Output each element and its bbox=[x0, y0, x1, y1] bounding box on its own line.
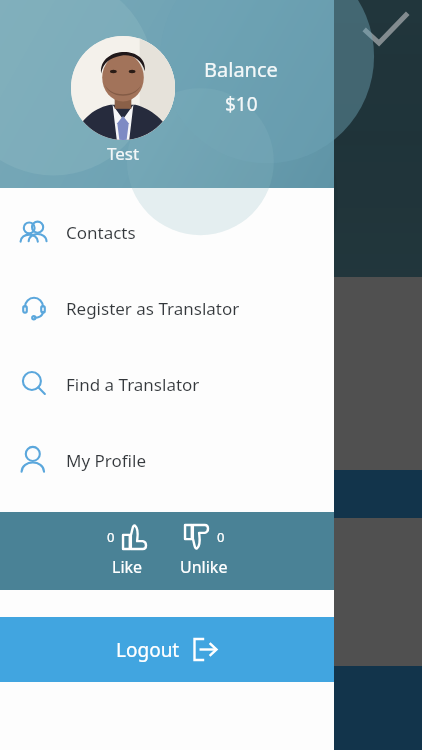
button[interactable]: Logout bbox=[0, 617, 334, 682]
button[interactable]: 0 bbox=[99, 520, 156, 582]
staticText: Balance bbox=[204, 56, 278, 83]
button[interactable]: 0 bbox=[172, 520, 236, 582]
staticText: Contacts bbox=[66, 221, 136, 244]
staticText: 0 bbox=[107, 528, 115, 546]
staticText: Like bbox=[112, 556, 143, 578]
button[interactable]: Contacts bbox=[0, 194, 334, 270]
button[interactable]: My Profile bbox=[0, 422, 334, 498]
staticText: Register as Translator bbox=[66, 297, 240, 320]
staticText: Test bbox=[71, 142, 175, 165]
button[interactable]: Register as Translator bbox=[0, 270, 334, 346]
staticText: $10 bbox=[225, 91, 258, 117]
staticText: Find a Translator bbox=[66, 373, 200, 396]
staticText: 0 bbox=[217, 528, 225, 546]
staticText: Logout bbox=[116, 637, 180, 663]
staticText: My Profile bbox=[66, 449, 146, 472]
button[interactable]: Find a Translator bbox=[0, 346, 334, 422]
other: Logout bbox=[193, 637, 218, 662]
staticText: Unlike bbox=[180, 556, 228, 578]
